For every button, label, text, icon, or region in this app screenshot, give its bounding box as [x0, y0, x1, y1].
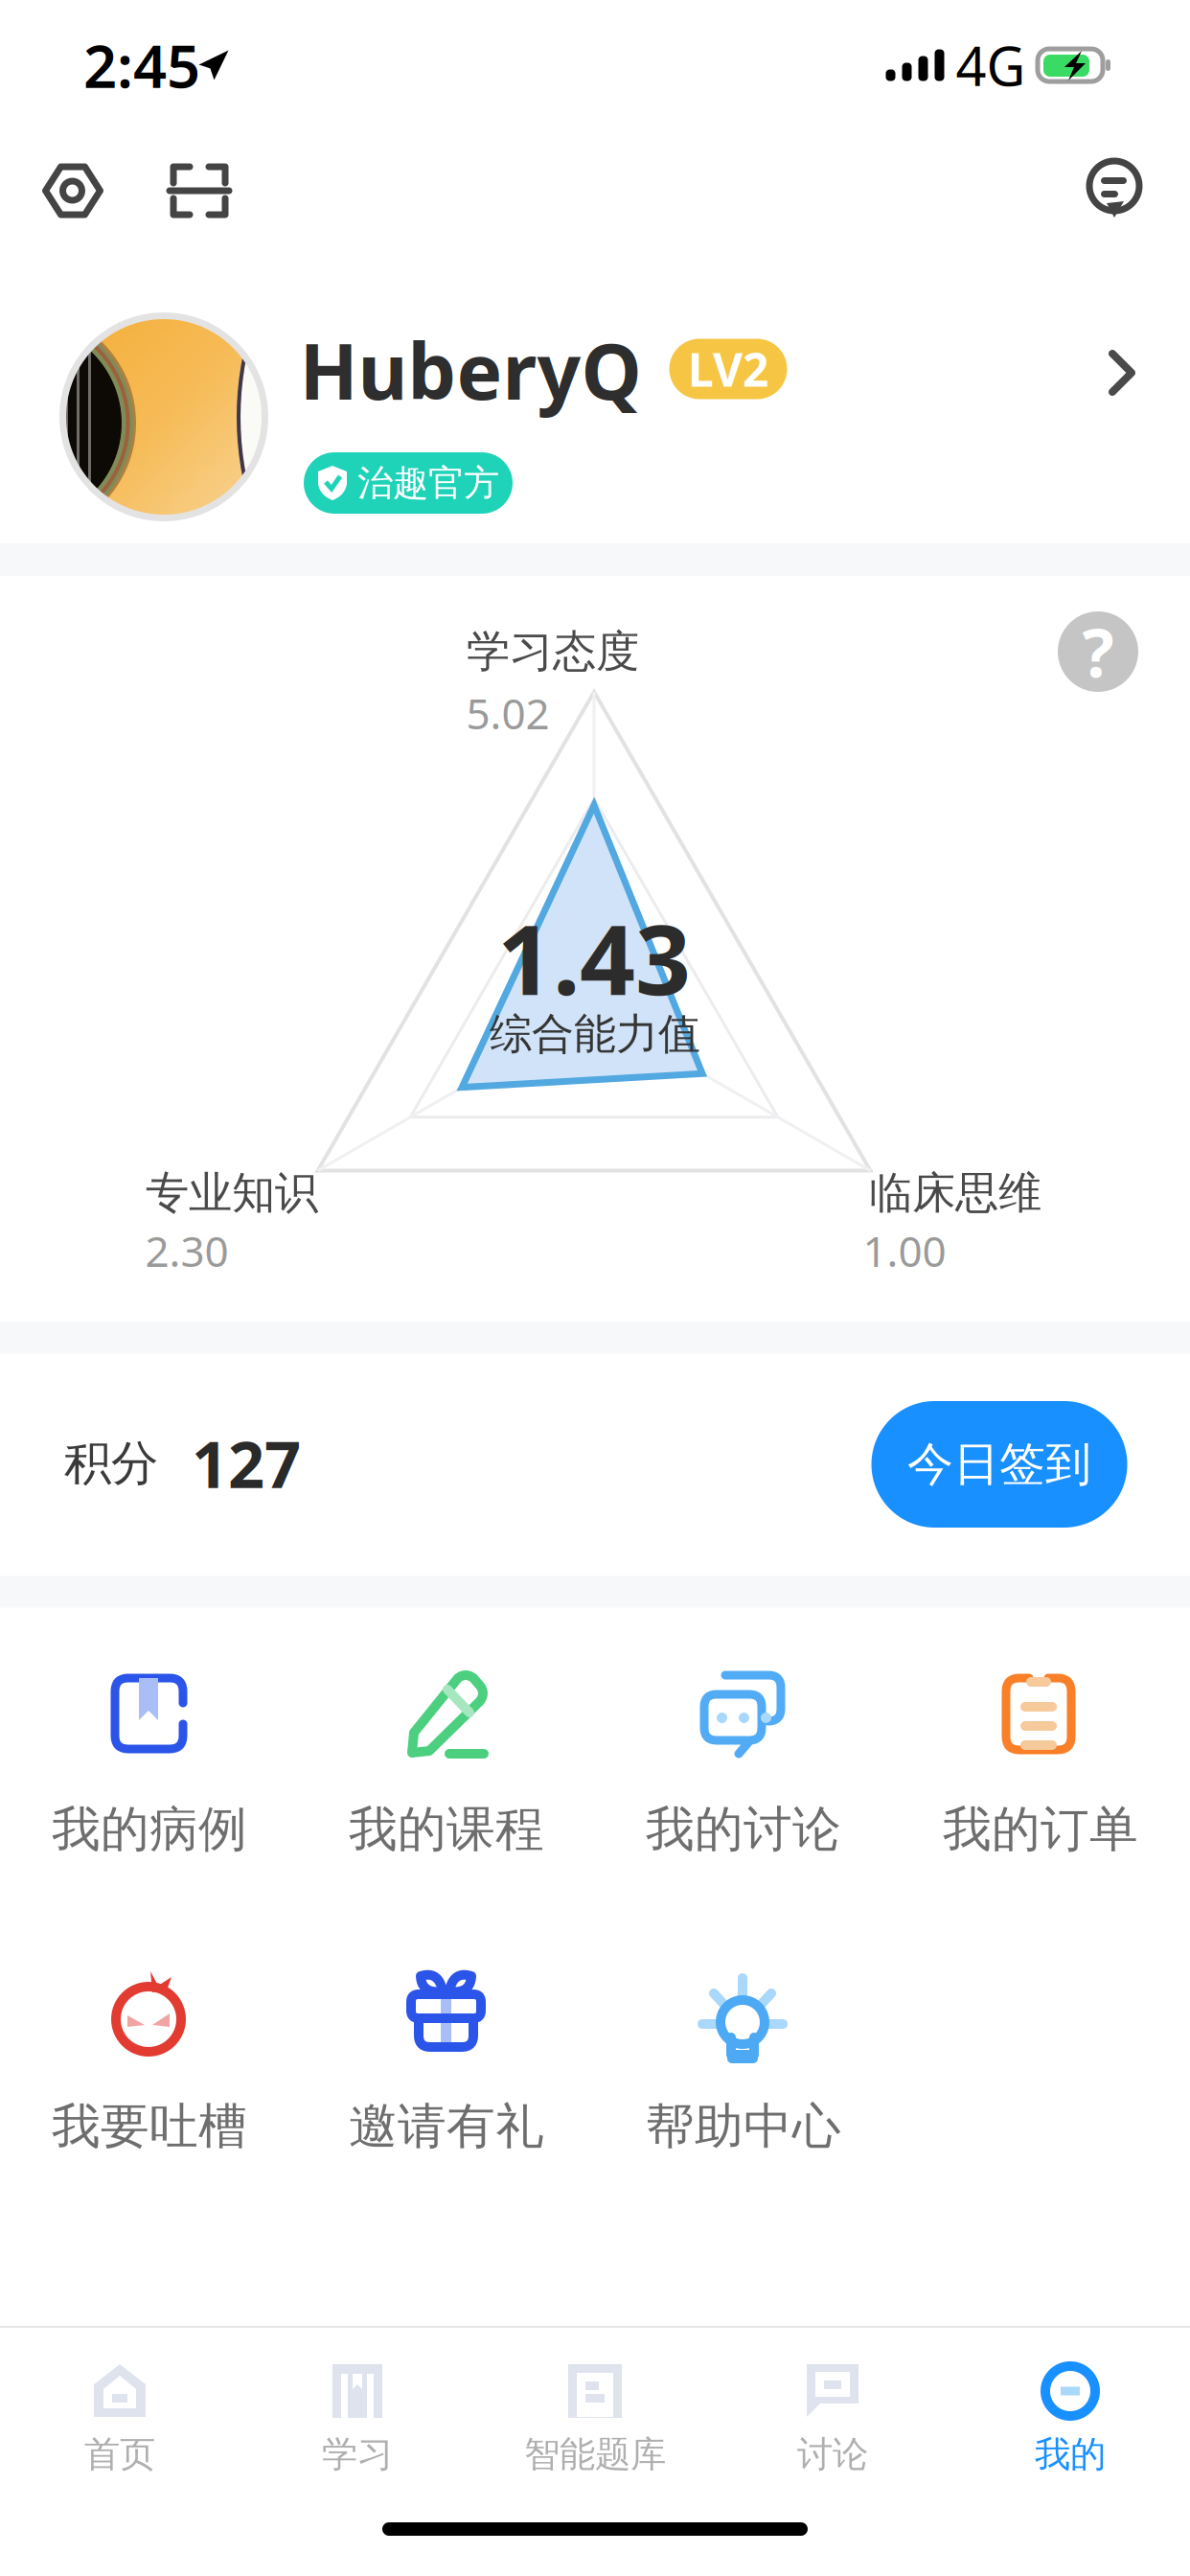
staticText: 帮助中心 [646, 2097, 841, 2156]
button[interactable]: 学习 [239, 2357, 476, 2481]
staticText: 1.43 [497, 893, 691, 1022]
button[interactable]: Settings [42, 163, 104, 218]
button[interactable]: 我的病例 [1, 1667, 298, 1893]
button[interactable]: 我的课程 [298, 1667, 595, 1893]
staticText: 积分 [64, 1434, 158, 1492]
staticText: 智能题库 [524, 2432, 666, 2476]
staticText: 127 [192, 1421, 301, 1506]
staticText: 我要吐槽 [52, 2097, 247, 2156]
staticText: 讨论 [797, 2432, 868, 2476]
staticText: 1.00 [863, 1223, 946, 1279]
staticText: ? [1082, 608, 1114, 696]
staticText: 我的课程 [349, 1800, 544, 1859]
button[interactable]: 我的订单 [892, 1667, 1189, 1893]
button[interactable]: HuberyQ [0, 292, 1190, 541]
button[interactable]: Messages [1085, 157, 1144, 218]
button[interactable]: 智能题库 [476, 2357, 714, 2481]
staticText: HuberyQ [299, 319, 641, 421]
staticText: 专业知识 [146, 1166, 318, 1220]
staticText: 4G [956, 30, 1026, 101]
button[interactable]: Help [1058, 611, 1138, 692]
staticText: 我的订单 [943, 1800, 1138, 1859]
staticText: 5.02 [466, 685, 549, 741]
button[interactable]: Scan [170, 163, 229, 218]
staticText: 综合能力值 [490, 1008, 700, 1060]
staticText: 今日签到 [907, 1436, 1091, 1493]
button[interactable]: 我的 [951, 2357, 1189, 2481]
button[interactable]: 讨论 [714, 2357, 951, 2481]
staticText: 临床思维 [869, 1166, 1041, 1220]
button[interactable]: 首页 [1, 2357, 239, 2481]
staticText: 邀请有礼 [349, 2097, 544, 2156]
staticText: 我的病例 [52, 1800, 247, 1859]
button[interactable]: 今日签到 [871, 1401, 1127, 1528]
staticText: 我的 [1035, 2432, 1106, 2476]
button[interactable]: 我的讨论 [595, 1667, 892, 1893]
staticText: 2.30 [145, 1223, 229, 1279]
staticText: LV2 [688, 338, 768, 399]
staticText: 治趣官方 [357, 461, 499, 505]
staticText: 2:45 [83, 26, 200, 104]
staticText: 我的讨论 [646, 1800, 841, 1859]
button[interactable]: 邀请有礼 [298, 1964, 595, 2190]
button[interactable]: 我要吐槽 [1, 1964, 298, 2190]
staticText: 学习 [322, 2432, 393, 2476]
staticText: 首页 [84, 2432, 155, 2476]
button[interactable]: 帮助中心 [595, 1964, 892, 2190]
staticText: 学习态度 [467, 625, 639, 678]
